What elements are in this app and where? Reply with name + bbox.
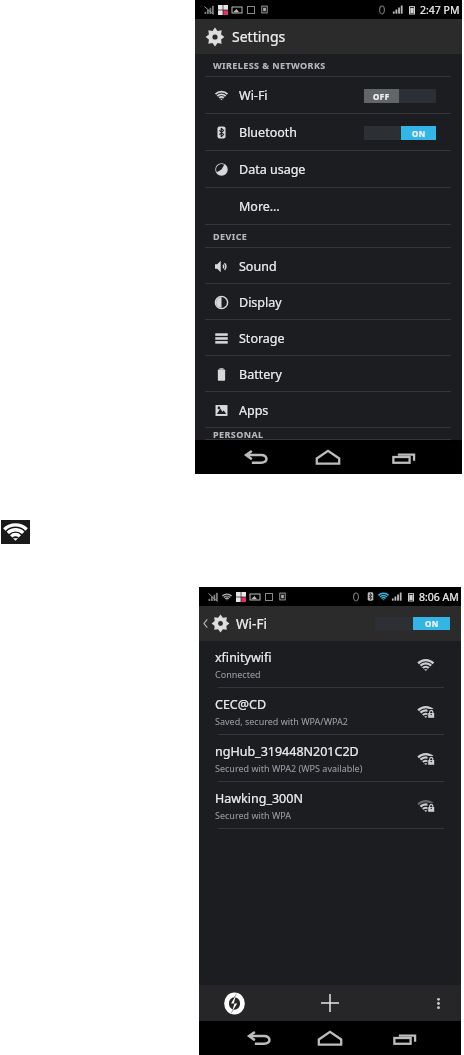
staticText: WIRELESS & NETWORKS <box>213 59 326 71</box>
button[interactable]: Recents <box>368 440 440 474</box>
staticText: Wi-Fi <box>239 87 268 104</box>
staticText: OFF <box>373 91 390 102</box>
staticText: Saved, secured with WPA/WPA2 <box>215 715 348 727</box>
staticText: Bluetooth <box>239 124 298 141</box>
staticText: DEVICE <box>213 230 248 242</box>
button[interactable]: ON <box>364 126 436 140</box>
staticText: Apps <box>239 402 269 419</box>
staticText: Connected <box>215 668 261 680</box>
staticText: More… <box>239 198 280 215</box>
staticText: PERSONAL <box>213 428 264 439</box>
staticText: Display <box>239 294 282 311</box>
button[interactable]: Battery <box>195 356 462 392</box>
staticText: xfinitywifi <box>215 649 272 666</box>
button[interactable]: Add network <box>305 985 354 1021</box>
button[interactable]: xfinitywifi <box>199 641 461 688</box>
button[interactable]: Back <box>223 1021 294 1055</box>
button[interactable]: Hawking_300N <box>199 782 461 829</box>
button[interactable]: Data usage <box>195 151 462 188</box>
staticText: Wi-Fi <box>236 615 267 633</box>
staticText: ON <box>425 618 439 629</box>
button[interactable]: Back <box>220 440 292 474</box>
button[interactable]: Storage <box>195 320 462 356</box>
button[interactable]: ON <box>375 617 450 630</box>
button[interactable]: Home <box>292 440 364 474</box>
staticText: Secured with WPA <box>215 809 292 821</box>
staticText: Hawking_300N <box>215 790 303 807</box>
button[interactable]: CEC@CD <box>199 688 461 735</box>
button[interactable]: More options <box>415 985 461 1021</box>
other: Back <box>202 618 209 629</box>
staticText: 8:06 AM <box>419 590 459 604</box>
staticText: Battery <box>239 366 282 383</box>
button[interactable]: More… <box>195 188 462 225</box>
staticText: ngHub_319448N201C2D <box>215 743 359 760</box>
button[interactable]: Recents <box>369 1021 440 1055</box>
button[interactable]: OFF <box>364 89 436 103</box>
staticText: Storage <box>239 330 285 347</box>
button[interactable]: Display <box>195 284 462 320</box>
button[interactable]: Home <box>294 1021 365 1055</box>
staticText: ON <box>412 128 426 139</box>
button[interactable]: ngHub_319448N201C2D <box>199 735 461 782</box>
staticText: Settings <box>232 27 286 46</box>
button[interactable]: Apps <box>195 392 462 428</box>
staticText: Sound <box>239 258 277 275</box>
staticText: Secured with WPA2 (WPS available) <box>215 762 363 774</box>
staticText: Data usage <box>239 161 306 178</box>
button[interactable]: Sound <box>195 248 462 284</box>
button[interactable]: Settings <box>195 19 462 54</box>
button[interactable]: Back <box>199 606 461 641</box>
staticText: CEC@CD <box>215 696 267 713</box>
staticText: 2:47 PM <box>420 3 460 17</box>
button[interactable]: Scan <box>210 985 259 1021</box>
button[interactable]: Bluetooth <box>195 114 462 151</box>
button[interactable]: Wi-Fi <box>195 77 462 114</box>
